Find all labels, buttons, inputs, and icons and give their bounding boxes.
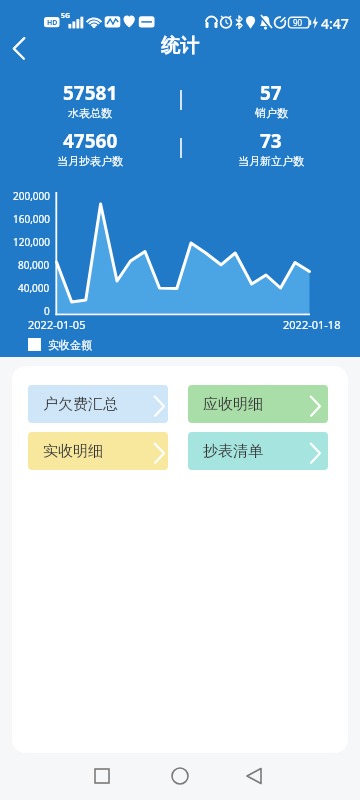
staticText: 户欠费汇总 (43, 395, 118, 414)
staticText: 实收明细 (43, 442, 103, 461)
staticText: 水表总数 (68, 106, 112, 120)
staticText: 57 (260, 80, 282, 106)
staticText: 47560 (63, 128, 118, 154)
staticText: 2022-01-18 (283, 317, 341, 332)
staticText: 应收明细 (203, 395, 263, 414)
staticText: 4:47 (321, 14, 349, 33)
staticText: 当月新立户数 (238, 154, 304, 168)
staticText: 73 (260, 128, 282, 154)
button[interactable]: 实收明细 (28, 432, 168, 470)
staticText: 抄表清单 (203, 442, 263, 461)
button[interactable]: 抄表清单 (188, 432, 328, 470)
button[interactable]: 户欠费汇总 (28, 385, 168, 423)
staticText: 120,000 (13, 235, 50, 249)
staticText: 当月抄表户数 (57, 154, 123, 168)
button[interactable]: 应收明细 (188, 385, 328, 423)
staticText: 40,000 (18, 281, 50, 295)
button[interactable] (8, 33, 34, 59)
staticText: 57581 (63, 80, 118, 106)
staticText: 90 (293, 17, 303, 28)
staticText: 2022-01-05 (28, 317, 86, 332)
staticText: HD (47, 18, 58, 28)
staticText: 200,000 (13, 189, 50, 203)
staticText: 实收金额 (48, 338, 92, 352)
staticText: 销户数 (255, 106, 288, 120)
staticText: 5G (61, 11, 71, 21)
staticText: 统计 (161, 34, 199, 58)
staticText: 0 (44, 304, 50, 318)
staticText: 80,000 (18, 258, 50, 272)
staticText: 160,000 (13, 212, 50, 226)
